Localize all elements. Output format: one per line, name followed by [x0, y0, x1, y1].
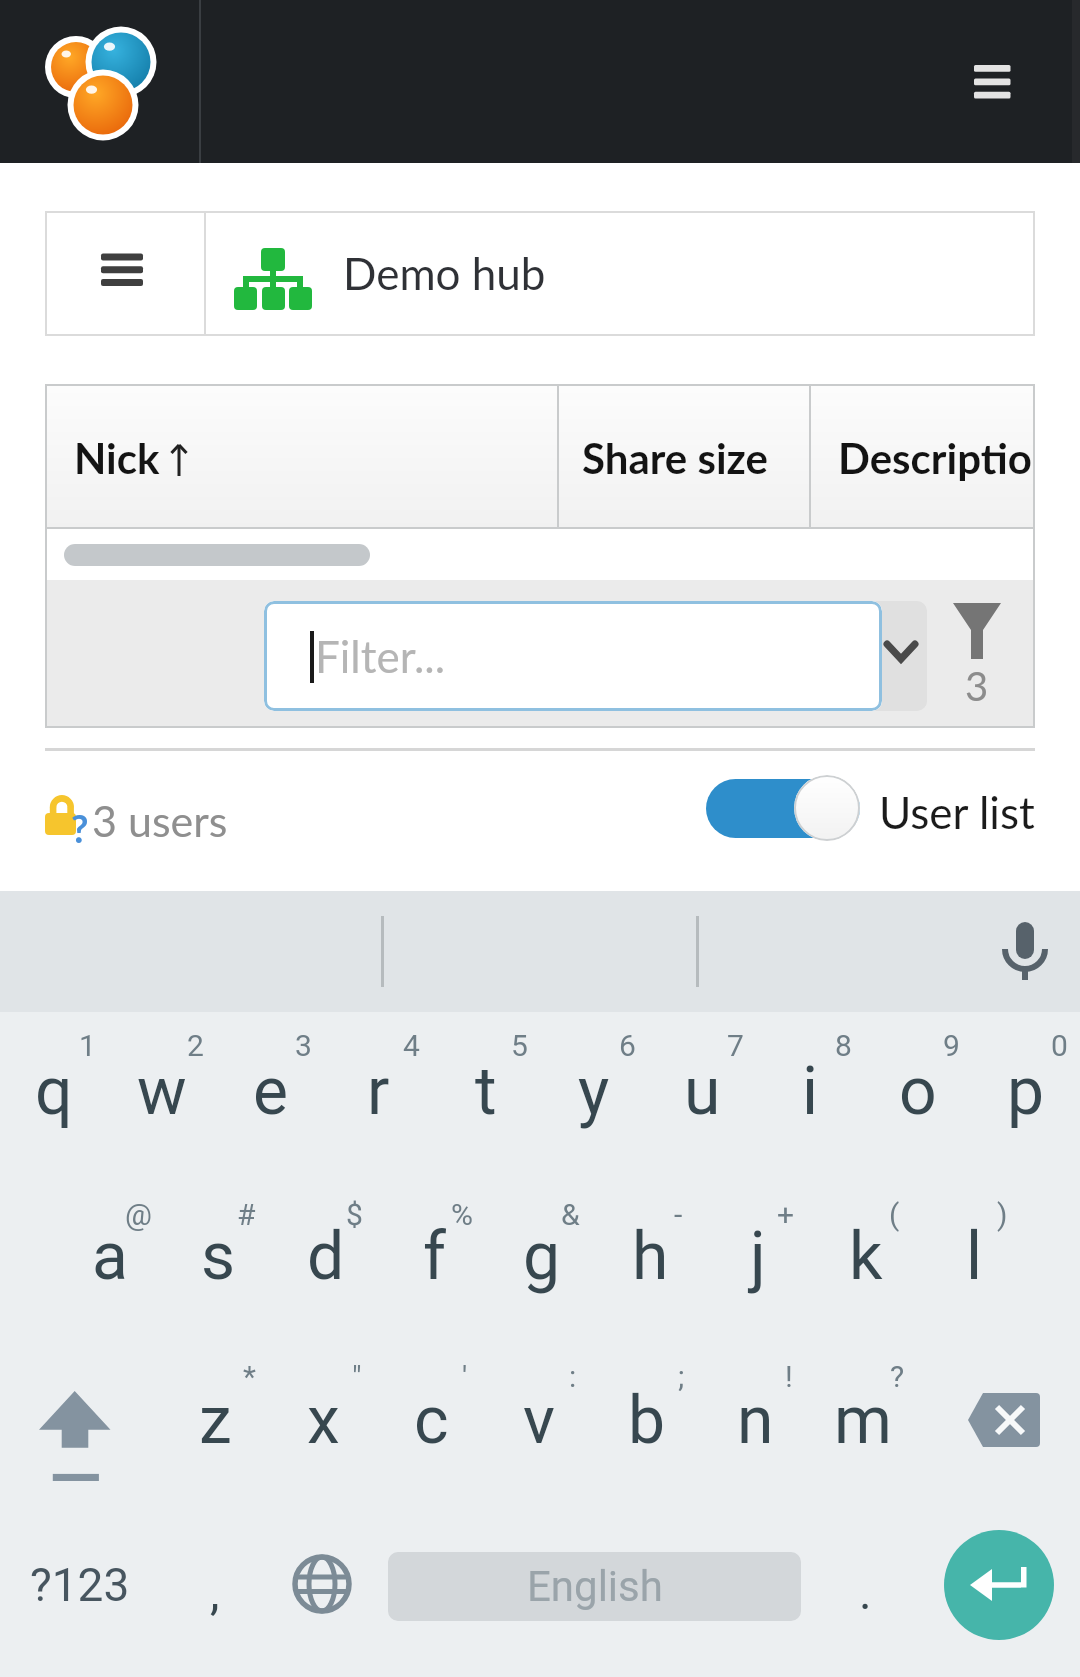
- staticText: p: [1007, 1053, 1045, 1130]
- staticText: o: [899, 1053, 937, 1130]
- button[interactable]: l: [920, 1181, 1028, 1331]
- staticText: #: [237, 1197, 256, 1232]
- staticText: 5: [511, 1028, 528, 1063]
- staticText: English: [527, 1562, 663, 1611]
- button[interactable]: [20, 1355, 140, 1485]
- button[interactable]: b: [593, 1345, 701, 1495]
- button[interactable]: English: [388, 1552, 801, 1621]
- staticText: ?123: [30, 1558, 130, 1612]
- staticText: 2: [187, 1028, 204, 1063]
- staticText: ?: [890, 1359, 905, 1394]
- button[interactable]: Description: [811, 386, 1033, 529]
- staticText: @: [125, 1197, 152, 1232]
- staticText: l: [966, 1218, 983, 1295]
- staticText: ): [997, 1197, 1008, 1232]
- staticText: &: [561, 1197, 580, 1232]
- staticText: b: [628, 1382, 666, 1459]
- button[interactable]: [30, 15, 170, 150]
- staticText: j: [750, 1218, 766, 1295]
- button[interactable]: n: [701, 1345, 809, 1495]
- staticText: q: [35, 1053, 73, 1130]
- staticText: .: [859, 1564, 872, 1620]
- staticText: v: [523, 1382, 555, 1459]
- staticText: r: [367, 1053, 390, 1130]
- button[interactable]: [945, 1370, 1060, 1470]
- button[interactable]: k: [812, 1181, 920, 1331]
- button[interactable]: m: [809, 1345, 917, 1495]
- button[interactable]: j: [704, 1181, 812, 1331]
- staticText: ,: [210, 1564, 220, 1620]
- button[interactable]: a: [56, 1181, 164, 1331]
- staticText: Share size: [582, 433, 768, 483]
- button[interactable]: o: [864, 1016, 972, 1166]
- staticText: m: [834, 1382, 892, 1459]
- button[interactable]: [985, 905, 1065, 1000]
- button[interactable]: z: [161, 1345, 269, 1495]
- staticText: e: [253, 1053, 288, 1130]
- button[interactable]: r: [324, 1016, 432, 1166]
- button[interactable]: c: [377, 1345, 485, 1495]
- staticText: f: [423, 1218, 446, 1295]
- staticText: n: [737, 1382, 774, 1459]
- button[interactable]: t: [432, 1016, 540, 1166]
- button[interactable]: [706, 779, 860, 838]
- staticText: User list: [879, 786, 1035, 830]
- staticText: $: [346, 1197, 363, 1232]
- staticText: 8: [835, 1028, 852, 1063]
- staticText: 7: [727, 1028, 744, 1063]
- button[interactable]: u: [648, 1016, 756, 1166]
- button[interactable]: q: [0, 1016, 108, 1166]
- button[interactable]: w: [108, 1016, 216, 1166]
- staticText: 0: [1051, 1028, 1068, 1063]
- staticText: ;: [678, 1359, 685, 1394]
- button[interactable]: [940, 595, 1020, 710]
- button[interactable]: g: [488, 1181, 596, 1331]
- staticText: :: [569, 1359, 577, 1394]
- staticText: ": [352, 1359, 362, 1394]
- button[interactable]: v: [485, 1345, 593, 1495]
- staticText: Nick: [74, 433, 160, 483]
- staticText: k: [849, 1218, 883, 1295]
- button[interactable]: i: [756, 1016, 864, 1166]
- button[interactable]: f: [380, 1181, 488, 1331]
- button[interactable]: [264, 601, 882, 711]
- button[interactable]: e: [216, 1016, 324, 1166]
- staticText: 9: [943, 1028, 960, 1063]
- button[interactable]: Share size: [582, 386, 802, 529]
- staticText: s: [201, 1218, 236, 1295]
- staticText: -: [674, 1197, 683, 1232]
- staticText: 3 users: [92, 795, 228, 839]
- button[interactable]: p: [972, 1016, 1080, 1166]
- staticText: h: [632, 1218, 669, 1295]
- button[interactable]: y: [540, 1016, 648, 1166]
- button[interactable]: [958, 50, 1026, 114]
- button[interactable]: .: [825, 1532, 905, 1652]
- button[interactable]: Nick: [74, 386, 374, 529]
- staticText: ?: [71, 805, 89, 845]
- button[interactable]: [206, 213, 1033, 334]
- button[interactable]: [264, 601, 927, 711]
- staticText: 6: [619, 1028, 636, 1063]
- button[interactable]: [282, 1544, 362, 1624]
- button[interactable]: ,: [175, 1532, 255, 1652]
- staticText: t: [475, 1053, 497, 1130]
- staticText: *: [243, 1359, 256, 1394]
- staticText: (: [889, 1197, 900, 1232]
- button[interactable]: d: [272, 1181, 380, 1331]
- button[interactable]: ?123: [20, 1520, 140, 1650]
- staticText: y: [578, 1053, 610, 1130]
- staticText: !: [785, 1359, 793, 1394]
- staticText: d: [307, 1218, 345, 1295]
- button[interactable]: h: [596, 1181, 704, 1331]
- staticText: w: [137, 1053, 187, 1130]
- button[interactable]: [944, 1530, 1054, 1640]
- staticText: x: [307, 1382, 340, 1459]
- staticText: +: [777, 1197, 795, 1232]
- staticText: ': [462, 1359, 468, 1394]
- staticText: 3: [965, 662, 989, 702]
- button[interactable]: [45, 211, 204, 336]
- button[interactable]: x: [269, 1345, 377, 1495]
- button[interactable]: s: [164, 1181, 272, 1331]
